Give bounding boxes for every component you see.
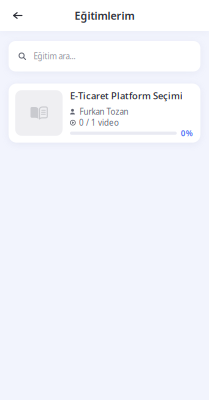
staticText: Eğitimlerim bbox=[74, 8, 134, 23]
staticText: 0 / 1 video bbox=[79, 117, 119, 128]
button[interactable]: Eğitim ara... bbox=[9, 41, 200, 71]
staticText: E-Ticaret Platform Seçimi bbox=[70, 89, 183, 102]
button[interactable]: E-Ticaret Platform Seçimi bbox=[9, 83, 200, 143]
staticText: 0% bbox=[181, 128, 193, 138]
staticText: Furkan Tozan bbox=[79, 106, 128, 117]
button[interactable]: Back bbox=[7, 4, 29, 26]
staticText: Eğitim ara... bbox=[34, 51, 76, 61]
